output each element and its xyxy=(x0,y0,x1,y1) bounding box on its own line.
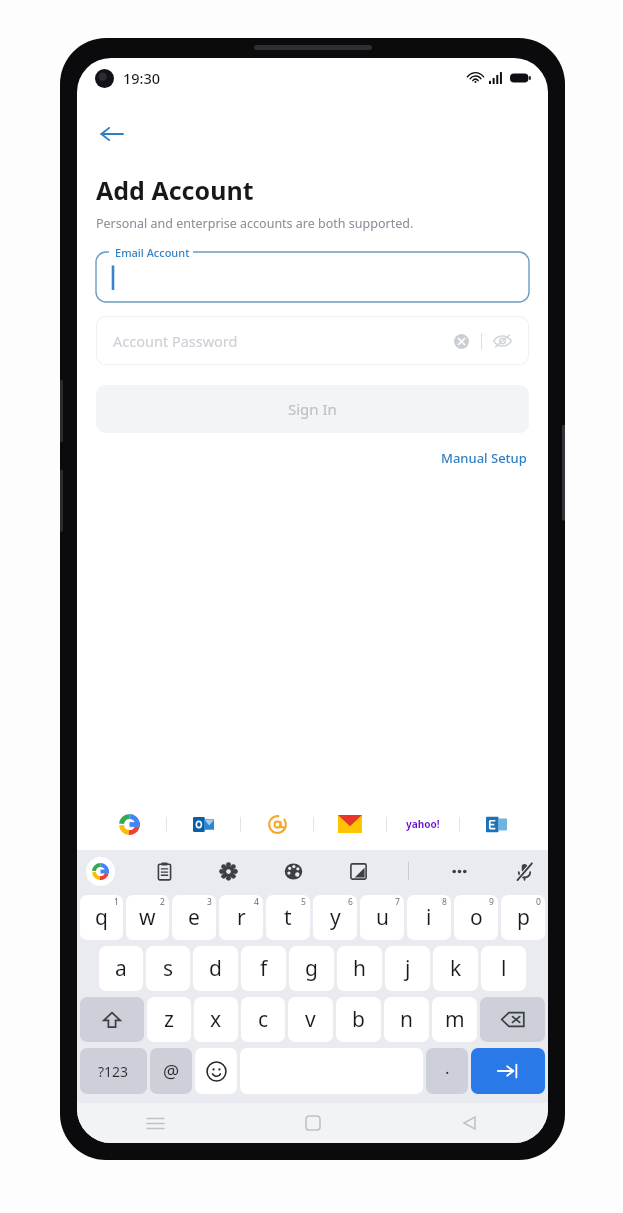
staticText: s xyxy=(163,954,174,983)
button[interactable]: Outlook xyxy=(167,807,240,841)
staticText: x xyxy=(210,1005,222,1034)
staticText: j xyxy=(405,954,411,983)
button[interactable]: Clipboard xyxy=(149,856,179,886)
button[interactable]: Account Password xyxy=(96,316,529,365)
button[interactable]: Manual Setup xyxy=(439,446,529,470)
staticText: 2 xyxy=(160,896,165,908)
button[interactable]: q xyxy=(80,895,123,940)
button[interactable]: p xyxy=(501,895,545,940)
button[interactable]: Emoji xyxy=(195,1048,237,1094)
button[interactable]: z xyxy=(147,997,191,1042)
staticText: yahoo! xyxy=(406,817,440,831)
staticText: z xyxy=(164,1005,174,1034)
staticText: o xyxy=(470,903,483,932)
button[interactable]: r xyxy=(219,895,263,940)
button[interactable]: c xyxy=(241,997,285,1042)
button[interactable]: d xyxy=(193,946,238,991)
staticText: Sign In xyxy=(288,399,337,419)
staticText: i xyxy=(426,903,432,932)
button[interactable]: Google xyxy=(93,807,166,841)
button[interactable]: Email Account xyxy=(96,252,529,302)
staticText: Manual Setup xyxy=(441,449,527,467)
staticText: h xyxy=(353,954,366,983)
button[interactable]: Back xyxy=(391,1103,548,1143)
button[interactable]: More options xyxy=(444,856,474,886)
button[interactable]: Resize keyboard xyxy=(343,856,373,886)
staticText: w xyxy=(139,903,156,932)
staticText: 7 xyxy=(395,896,400,908)
button[interactable]: Backspace xyxy=(480,997,545,1042)
button[interactable]: Yahoo xyxy=(387,807,459,841)
button[interactable]: Exchange xyxy=(460,807,532,841)
button[interactable]: v xyxy=(288,997,333,1042)
staticText: t xyxy=(284,903,292,932)
staticText: c xyxy=(258,1005,269,1034)
button[interactable]: g xyxy=(289,946,334,991)
button[interactable]: Google search xyxy=(86,857,115,886)
button[interactable]: Settings xyxy=(213,856,243,886)
staticText: d xyxy=(209,954,222,983)
staticText: 19:30 xyxy=(123,68,161,88)
staticText: 3 xyxy=(207,896,212,908)
button[interactable]: AOL xyxy=(241,807,313,841)
staticText: 6 xyxy=(348,896,353,908)
button[interactable]: Sign In xyxy=(96,385,529,433)
staticText: 1 xyxy=(114,896,119,908)
button[interactable]: ?123 xyxy=(80,1048,147,1094)
staticText: v xyxy=(305,1005,316,1034)
staticText: 5 xyxy=(301,896,306,908)
staticText: q xyxy=(95,903,108,932)
staticText: . xyxy=(445,1056,450,1079)
staticText: 0 xyxy=(536,896,541,908)
button[interactable]: f xyxy=(241,946,286,991)
staticText: ?123 xyxy=(98,1062,129,1081)
button[interactable]: w xyxy=(126,895,169,940)
button[interactable]: y xyxy=(313,895,357,940)
button[interactable]: Show password xyxy=(489,328,515,354)
button[interactable]: Clear xyxy=(448,328,474,354)
button[interactable]: b xyxy=(336,997,381,1042)
staticText: y xyxy=(330,903,341,932)
staticText: Personal and enterprise accounts are bot… xyxy=(96,215,414,232)
button[interactable]: m xyxy=(432,997,477,1042)
staticText: u xyxy=(376,903,389,932)
button[interactable]: a xyxy=(99,946,143,991)
button[interactable]: e xyxy=(172,895,216,940)
button[interactable]: Themes xyxy=(278,856,308,886)
button[interactable]: . xyxy=(426,1048,468,1094)
button[interactable]: Mail xyxy=(314,807,386,841)
button[interactable]: h xyxy=(337,946,382,991)
staticText: Add Account xyxy=(96,173,254,207)
button[interactable]: s xyxy=(146,946,190,991)
staticText: Account Password xyxy=(113,331,238,351)
staticText: f xyxy=(260,954,268,983)
button[interactable]: Voice input off xyxy=(509,856,539,886)
staticText: g xyxy=(305,954,318,983)
button[interactable]: i xyxy=(407,895,451,940)
button[interactable]: k xyxy=(433,946,478,991)
button[interactable]: o xyxy=(454,895,498,940)
button[interactable]: u xyxy=(360,895,404,940)
button[interactable]: j xyxy=(385,946,430,991)
staticText: a xyxy=(115,954,127,983)
button[interactable]: @ xyxy=(150,1048,192,1094)
staticText: e xyxy=(188,903,200,932)
button[interactable]: x xyxy=(194,997,238,1042)
button[interactable]: Back xyxy=(89,112,133,156)
button[interactable]: n xyxy=(384,997,429,1042)
staticText: p xyxy=(517,903,530,932)
button[interactable]: l xyxy=(481,946,526,991)
button[interactable]: t xyxy=(266,895,310,940)
button[interactable]: Home xyxy=(234,1103,391,1143)
staticText: @ xyxy=(163,1059,180,1084)
staticText: 8 xyxy=(442,896,447,908)
button[interactable]: Next xyxy=(471,1048,545,1094)
staticText: m xyxy=(445,1005,465,1034)
staticText: b xyxy=(352,1005,365,1034)
staticText: 4 xyxy=(254,896,259,908)
button[interactable]: Recent apps xyxy=(77,1103,234,1143)
staticText: r xyxy=(237,903,246,932)
button[interactable]: Shift xyxy=(80,997,144,1042)
staticText: 9 xyxy=(489,896,494,908)
